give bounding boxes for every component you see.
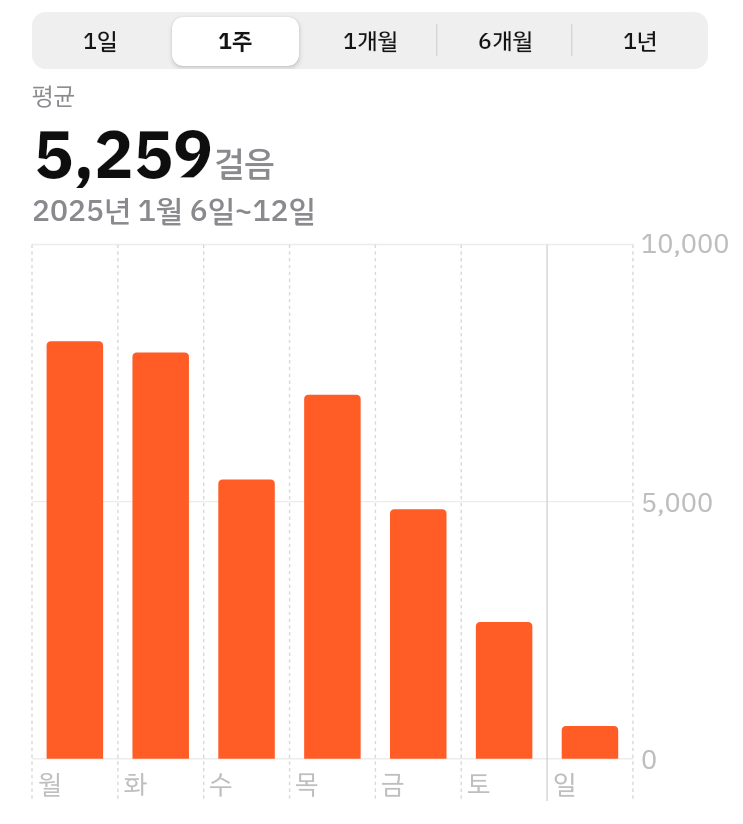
staticText: 걸음 xyxy=(214,138,275,189)
staticText: 토 xyxy=(467,765,491,804)
staticText: 10,000 xyxy=(641,224,730,265)
staticText: 5,000 xyxy=(641,483,714,524)
button[interactable]: 6개월 xyxy=(438,12,573,69)
staticText: 2025년 1월 6일~12일 xyxy=(32,188,316,233)
staticText: 5,259 xyxy=(34,106,213,205)
staticText: 1년 xyxy=(623,24,658,59)
staticText: 1개월 xyxy=(343,24,398,59)
staticText: 6개월 xyxy=(478,24,533,59)
button[interactable]: 1주 xyxy=(168,12,303,69)
staticText: 금 xyxy=(381,765,405,804)
button[interactable]: 1일 xyxy=(32,12,168,69)
staticText: 평균 xyxy=(32,78,75,114)
staticText: 목 xyxy=(295,765,319,804)
staticText: 수 xyxy=(209,765,233,804)
staticText: 화 xyxy=(124,765,148,804)
staticText: 일 xyxy=(553,765,577,804)
button[interactable]: 1개월 xyxy=(303,12,438,69)
staticText: 0 xyxy=(641,740,658,781)
staticText: 1주 xyxy=(218,24,253,59)
staticText: 1일 xyxy=(83,24,118,59)
button[interactable]: 1년 xyxy=(573,12,708,69)
staticText: 월 xyxy=(38,765,62,804)
